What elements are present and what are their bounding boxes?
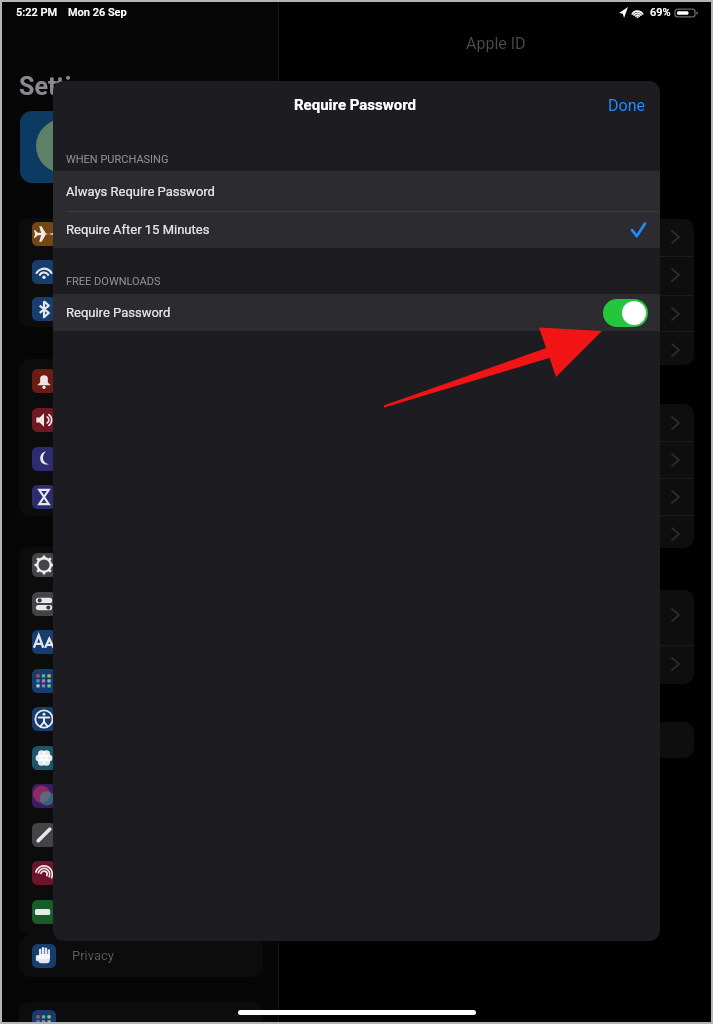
staticText: 5:22 PM — [16, 6, 58, 19]
button[interactable]: Wi-Fi — [19, 253, 263, 291]
button[interactable]: Settings item — [295, 218, 694, 256]
button[interactable]: Settings item — [295, 478, 694, 516]
button[interactable]: Settings item — [295, 256, 694, 294]
staticText: Settings — [19, 72, 113, 101]
button[interactable]: Screen Time — [19, 478, 263, 516]
button[interactable]: Accessibility — [19, 700, 263, 738]
button[interactable]: Settings item — [295, 331, 694, 369]
button[interactable]: Apple Pencil — [19, 816, 263, 854]
staticText: Require Password — [66, 305, 171, 320]
button[interactable]: Sounds — [19, 401, 263, 439]
button[interactable]: Siri & Search — [19, 777, 263, 815]
staticText: 69% — [650, 6, 671, 19]
button[interactable]: Privacy — [19, 937, 263, 975]
staticText: Require Password — [294, 96, 417, 114]
button[interactable]: Settings item — [295, 596, 694, 634]
button[interactable]: Display & Brightness — [19, 623, 263, 661]
button[interactable]: Settings item — [295, 645, 694, 683]
button[interactable]: Settings item — [295, 441, 694, 479]
staticText: Apple ID — [466, 34, 526, 53]
button[interactable]: Require Password, on — [603, 299, 648, 327]
staticText: Done — [608, 96, 645, 115]
staticText: FREE DOWNLOADS — [66, 275, 161, 288]
button[interactable]: Settings item — [295, 404, 694, 442]
button[interactable]: Battery — [19, 893, 263, 931]
button[interactable]: Focus — [19, 440, 263, 478]
button[interactable]: Require After 15 Minutes — [53, 211, 660, 248]
staticText: Require After 15 Minutes — [66, 222, 210, 237]
button[interactable]: Apple ID account — [20, 111, 92, 183]
staticText: Always Require Password — [66, 184, 215, 199]
button[interactable]: Bluetooth — [19, 290, 263, 328]
button[interactable]: Done — [593, 87, 660, 124]
button[interactable]: Home Screen & Dock — [19, 662, 263, 700]
button[interactable]: Settings item — [295, 295, 694, 333]
button[interactable]: Notifications — [19, 362, 263, 400]
staticText: WHEN PURCHASING — [66, 153, 169, 166]
button[interactable]: App Store — [19, 1003, 263, 1024]
button[interactable]: Always Require Password — [53, 171, 660, 211]
staticText: Mon 26 Sep — [68, 6, 127, 19]
button[interactable]: Settings item — [295, 515, 694, 553]
button[interactable]: Touch ID & Passcode — [19, 854, 263, 892]
staticText: Privacy — [72, 948, 114, 963]
button[interactable]: General — [19, 546, 263, 584]
button[interactable]: Wallpaper — [19, 739, 263, 777]
button[interactable]: Airplane Mode — [19, 215, 263, 253]
button[interactable]: Control Center — [19, 585, 263, 623]
